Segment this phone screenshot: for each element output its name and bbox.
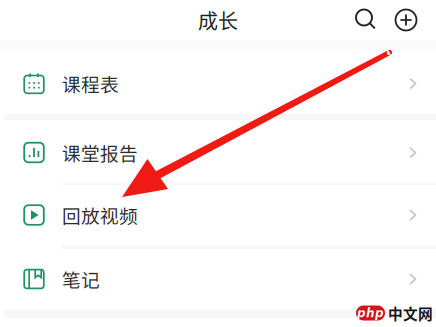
staticText: 回放视频 bbox=[62, 201, 138, 228]
button[interactable]: 回放视频 bbox=[0, 185, 436, 245]
button[interactable]: 课程表 bbox=[0, 52, 436, 114]
button[interactable]: 笔记 bbox=[0, 249, 436, 309]
staticText: 课程表 bbox=[62, 70, 119, 97]
staticText: 成长 bbox=[198, 5, 238, 34]
button[interactable]: Add bbox=[386, 0, 426, 40]
button[interactable]: 课堂报告 bbox=[0, 120, 436, 182]
staticText: php bbox=[357, 306, 384, 320]
button[interactable]: Search bbox=[346, 0, 386, 40]
staticText: 中文网 bbox=[388, 302, 433, 324]
staticText: 课堂报告 bbox=[62, 139, 138, 166]
staticText: 笔记 bbox=[62, 265, 100, 292]
